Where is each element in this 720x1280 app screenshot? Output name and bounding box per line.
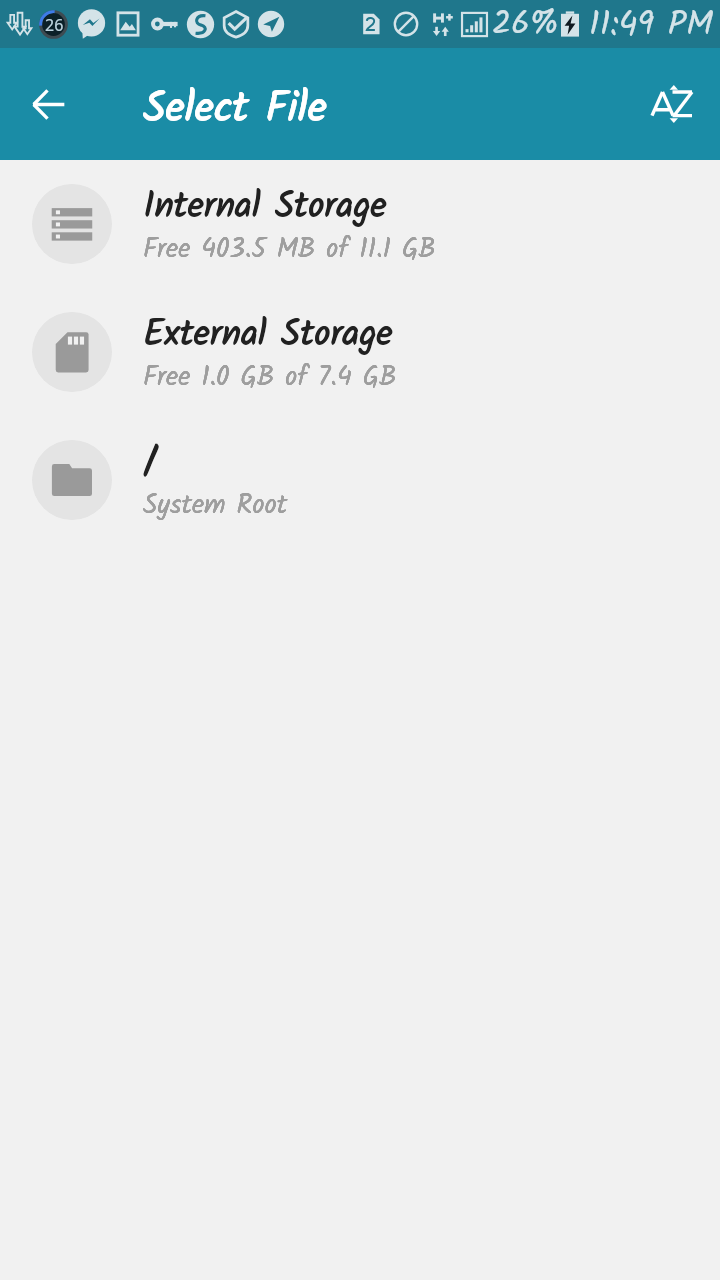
staticText: External Storage <box>143 307 393 364</box>
staticText: Free 403.5 MB of 11.1 GB <box>143 228 436 271</box>
button[interactable]: / <box>0 416 720 544</box>
staticText: Free 1.0 GB of 7.4 GB <box>143 356 397 399</box>
staticText: System Root <box>143 484 288 527</box>
staticText: Select File <box>144 76 328 143</box>
staticText: 26% <box>492 0 559 47</box>
staticText: Free 1.0 GB of 7.4 GB <box>143 356 397 399</box>
staticText: Free 403.5 MB of 11.1 GB <box>143 228 436 271</box>
staticText: Internal Storage <box>144 179 388 236</box>
staticText: System Root <box>143 484 288 527</box>
staticText: Select File <box>143 76 327 143</box>
staticText: External Storage <box>144 307 394 364</box>
staticText: External Storage <box>143 308 393 365</box>
staticText: 26 <box>45 14 64 36</box>
staticText: / <box>143 436 156 493</box>
staticText: Internal Storage <box>143 179 387 236</box>
button[interactable]: External Storage <box>0 288 720 416</box>
staticText: System Root <box>143 484 288 527</box>
button[interactable]: Internal Storage <box>0 160 720 288</box>
staticText: Internal Storage <box>143 180 387 237</box>
staticText: Select File <box>143 77 327 144</box>
button[interactable]: Sort alphabetically <box>638 70 706 138</box>
staticText: Free 403.5 MB of 11.1 GB <box>143 228 436 271</box>
button[interactable]: Back <box>14 70 82 138</box>
staticText: / <box>144 435 157 492</box>
staticText: 11:49 PM <box>589 0 713 47</box>
staticText: / <box>143 435 156 492</box>
staticText: Free 1.0 GB of 7.4 GB <box>143 356 397 399</box>
